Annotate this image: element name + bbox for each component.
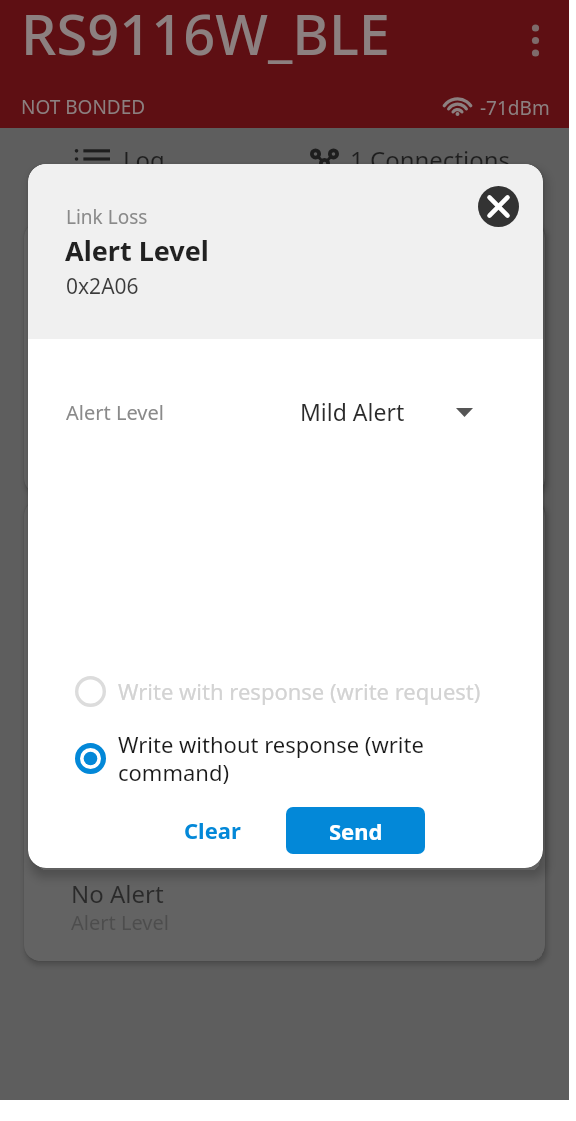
staticText: Alert Level: [71, 909, 169, 936]
button[interactable]: 1 Connections: [284, 131, 569, 187]
staticText: Alert Level: [65, 232, 209, 269]
button[interactable]: Clear: [168, 805, 257, 855]
button[interactable]: Write without response (write command): [28, 722, 543, 794]
button[interactable]: More options: [512, 18, 558, 64]
staticText: 0x2A06: [66, 272, 139, 301]
button[interactable]: Write with response (write request): [28, 665, 543, 717]
button[interactable]: Log: [0, 131, 284, 187]
staticText: Mild Alert: [300, 396, 405, 427]
staticText: Send: [329, 816, 383, 846]
staticText: Log: [123, 143, 165, 176]
staticText: NOT BONDED: [21, 94, 146, 120]
staticText: Link Loss: [66, 204, 148, 230]
staticText: Alert Level: [66, 399, 164, 426]
staticText: Write without response (write command): [118, 729, 433, 787]
staticText: Clear: [184, 815, 241, 845]
staticText: 1 Connections: [350, 143, 511, 176]
staticText: No Alert: [71, 877, 164, 910]
staticText: Write with response (write request): [118, 676, 481, 706]
button[interactable]: Alert Level: [28, 376, 543, 440]
staticText: RS9116W_BLE: [21, 0, 391, 71]
button[interactable]: Close: [478, 186, 519, 227]
button[interactable]: Send: [286, 807, 425, 854]
staticText: -71dBm: [480, 95, 550, 121]
button[interactable]: No Alert: [24, 500, 545, 961]
button[interactable]: [24, 222, 545, 494]
